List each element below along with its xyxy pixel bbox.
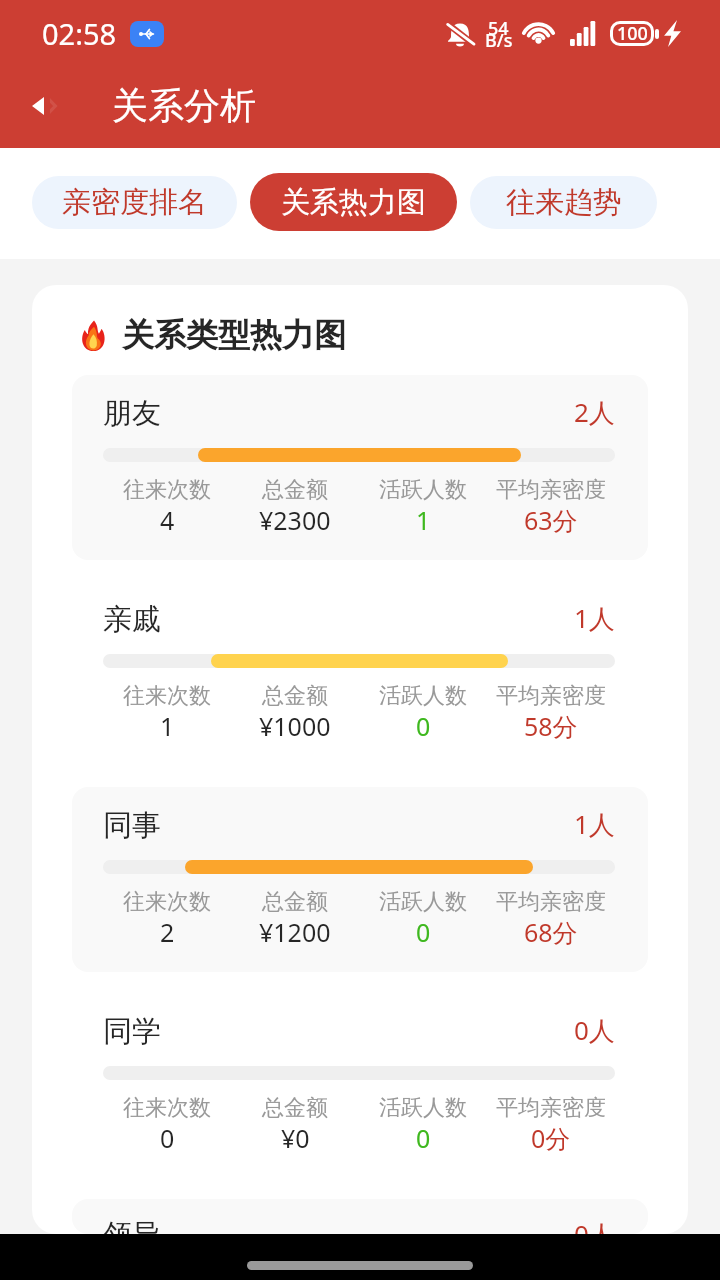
staticText: 1人 — [574, 600, 615, 636]
staticText: 往来趋势 — [506, 184, 622, 221]
staticText: 往来次数 — [123, 888, 211, 916]
staticText: 0 — [416, 1121, 431, 1155]
staticText: 活跃人数 — [379, 1094, 467, 1122]
staticText: 100 — [617, 21, 648, 46]
staticText: 02:58 — [42, 14, 117, 53]
staticText: 平均亲密度 — [496, 888, 606, 916]
staticText: 活跃人数 — [379, 682, 467, 710]
staticText: B/s — [485, 28, 513, 53]
staticText: 1 — [416, 503, 431, 537]
staticText: 总金额 — [262, 888, 328, 916]
button[interactable]: Back — [32, 82, 80, 130]
staticText: 领导 — [103, 1217, 161, 1234]
staticText: 0 — [160, 1121, 175, 1155]
staticText: 活跃人数 — [379, 888, 467, 916]
button[interactable]: 往来趋势 — [470, 176, 657, 229]
staticText: 活跃人数 — [379, 476, 467, 504]
button[interactable]: 亲戚 — [72, 581, 648, 766]
staticText: ¥1000 — [259, 709, 331, 743]
staticText: 平均亲密度 — [496, 1094, 606, 1122]
staticText: 58分 — [524, 709, 578, 743]
staticText: 同事 — [103, 807, 161, 844]
staticText: 平均亲密度 — [496, 682, 606, 710]
staticText: 1人 — [574, 806, 615, 842]
staticText: 4 — [160, 503, 175, 537]
staticText: 往来次数 — [123, 476, 211, 504]
staticText: 关系热力图 — [281, 184, 426, 221]
staticText: 关系分析 — [112, 83, 256, 128]
button[interactable]: 关系热力图 — [250, 173, 457, 231]
staticText: 2人 — [574, 394, 615, 430]
staticText: ¥1200 — [259, 915, 331, 949]
staticText: 68分 — [524, 915, 578, 949]
button[interactable]: 同学 — [72, 993, 648, 1178]
staticText: 总金额 — [262, 1094, 328, 1122]
staticText: 总金额 — [262, 682, 328, 710]
button[interactable]: 朋友 — [72, 375, 648, 560]
button[interactable]: 同事 — [72, 787, 648, 972]
staticText: 0人 — [574, 1012, 615, 1048]
staticText: 2 — [160, 915, 175, 949]
staticText: 0 — [416, 915, 431, 949]
staticText: 54 — [488, 16, 509, 41]
staticText: 往来次数 — [123, 682, 211, 710]
staticText: 朋友 — [103, 395, 161, 432]
staticText: 平均亲密度 — [496, 476, 606, 504]
staticText: 总金额 — [262, 476, 328, 504]
staticText: 63分 — [524, 503, 578, 537]
staticText: 往来次数 — [123, 1094, 211, 1122]
staticText: 0分 — [531, 1121, 571, 1155]
staticText: 0 — [416, 709, 431, 743]
staticText: 0人 — [574, 1216, 615, 1234]
staticText: 1 — [160, 709, 175, 743]
staticText: 亲戚 — [103, 601, 161, 638]
button[interactable]: 领导 — [72, 1199, 648, 1234]
staticText: 关系类型热力图 — [122, 315, 346, 355]
staticText: ¥0 — [281, 1121, 310, 1155]
staticText: ¥2300 — [259, 503, 331, 537]
staticText: 亲密度排名 — [62, 184, 207, 221]
staticText: 同学 — [103, 1013, 161, 1050]
button[interactable]: 亲密度排名 — [32, 176, 237, 229]
